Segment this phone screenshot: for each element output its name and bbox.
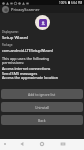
button[interactable]: Menu <box>2 141 8 147</box>
staticText: Displayname: <box>2 30 19 34</box>
staticText: Add to ignore list <box>28 92 56 97</box>
button[interactable]: Uninstall <box>1 102 83 112</box>
button[interactable]: Back <box>1 115 83 125</box>
button[interactable]: Add to ignore list <box>1 89 83 99</box>
button[interactable]: Back <box>17 139 27 149</box>
staticText: Access internet connections Send SMS mes… <box>2 66 58 80</box>
staticText: Back <box>38 118 46 123</box>
staticText: Package: <box>2 43 13 47</box>
staticText: PrivacyScanner <box>11 7 40 12</box>
staticText: 6:54 PM <box>71 1 83 5</box>
button[interactable]: Recents <box>58 139 68 149</box>
staticText: This app uses the following permissions: <box>2 56 50 66</box>
staticText: 100% <box>59 1 67 5</box>
staticText: Setup Wizard <box>2 35 28 41</box>
staticText: Uninstall <box>35 105 50 110</box>
staticText: com.android.LTESetupWizard <box>2 48 53 53</box>
button[interactable]: Home <box>37 139 47 149</box>
